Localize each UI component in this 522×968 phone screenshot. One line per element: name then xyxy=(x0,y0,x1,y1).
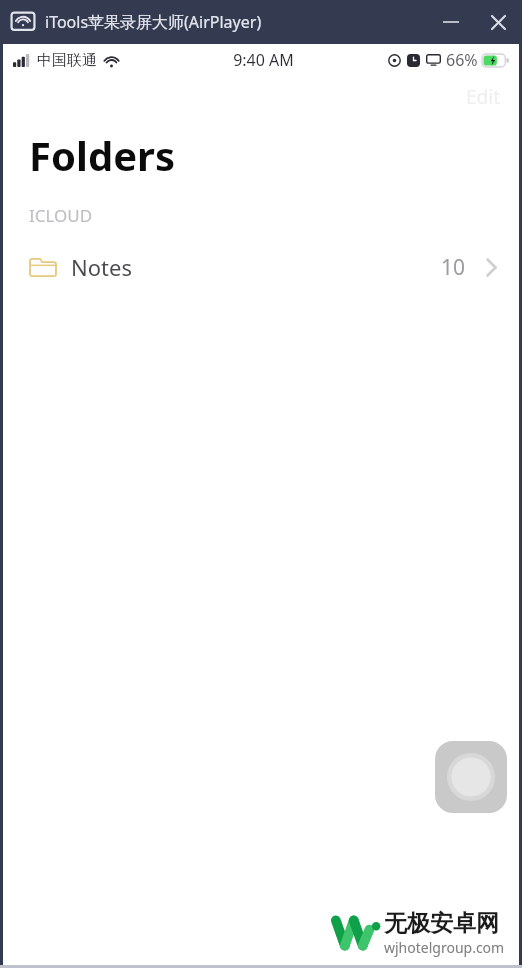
staticText: 9:40 AM xyxy=(233,49,294,71)
button[interactable]: Record xyxy=(435,741,507,813)
staticText: Folders xyxy=(29,128,175,182)
button[interactable]: Close xyxy=(474,0,522,44)
staticText: iTools苹果录屏大师(AirPlayer) xyxy=(45,11,262,33)
staticText: Edit xyxy=(466,84,501,110)
staticText: wjhotelgroup.com xyxy=(384,938,505,957)
button[interactable]: Edit xyxy=(462,80,505,114)
button[interactable]: Minimize xyxy=(428,0,474,44)
staticText: 66% xyxy=(446,49,478,71)
button[interactable]: Notes xyxy=(3,243,519,291)
staticText: ICLOUD xyxy=(29,204,93,227)
staticText: 中国联通 xyxy=(37,51,97,70)
staticText: 无极安卓网 xyxy=(384,909,499,938)
staticText: 10 xyxy=(441,253,466,282)
staticText: Notes xyxy=(71,252,132,282)
